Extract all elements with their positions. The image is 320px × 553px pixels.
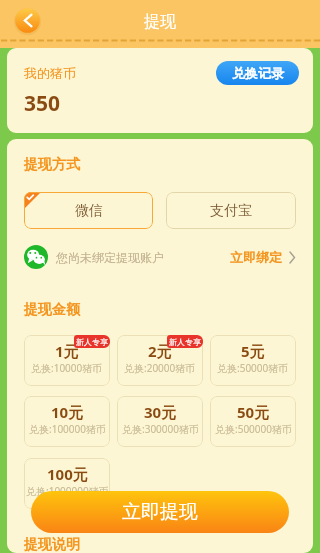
button[interactable]: 50元 <box>210 396 296 447</box>
staticText: 30元 <box>144 402 177 422</box>
staticText: 提现 <box>144 12 176 32</box>
staticText: 我的猪币 <box>24 65 76 81</box>
staticText: 兑换:100000猪币 <box>29 422 106 436</box>
staticText: 兑换:500000猪币 <box>215 422 292 436</box>
button[interactable]: 10元 <box>24 396 110 447</box>
button[interactable]: 您尚未绑定提现账户 <box>24 244 296 270</box>
staticText: 2元 <box>148 341 172 361</box>
staticText: 提现说明 <box>24 536 80 553</box>
staticText: 您尚未绑定提现账户 <box>56 250 164 265</box>
staticText: 10元 <box>51 402 84 422</box>
button[interactable]: 100元 <box>24 458 110 509</box>
staticText: 新人专享 <box>169 337 201 347</box>
staticText: 提现方式 <box>24 156 80 174</box>
staticText: 兑换记录 <box>232 65 284 81</box>
staticText: 兑换:10000猪币 <box>31 361 103 375</box>
button[interactable]: 支付宝 <box>166 192 296 229</box>
staticText: 提现金额 <box>24 301 80 319</box>
staticText: 50元 <box>237 402 270 422</box>
staticText: 兑换:20000猪币 <box>124 361 196 375</box>
staticText: 新人专享 <box>76 337 108 347</box>
button[interactable]: 1元 <box>24 335 110 386</box>
staticText: 350 <box>24 89 61 118</box>
button[interactable]: Back <box>14 7 41 34</box>
staticText: 兑换:1000000猪币 <box>26 484 109 498</box>
button[interactable]: 5元 <box>210 335 296 386</box>
button[interactable]: 微信 <box>24 192 153 229</box>
button[interactable]: 30元 <box>117 396 203 447</box>
staticText: 兑换:50000猪币 <box>217 361 289 375</box>
button[interactable]: 2元 <box>117 335 203 386</box>
button[interactable]: 立即提现 <box>31 491 289 533</box>
staticText: 1元 <box>55 341 79 361</box>
staticText: 5元 <box>241 341 265 361</box>
button[interactable]: 兑换记录 <box>216 61 299 85</box>
staticText: 微信 <box>75 202 103 220</box>
staticText: 支付宝 <box>210 202 252 220</box>
staticText: 兑换:300000猪币 <box>122 422 199 436</box>
staticText: 立即提现 <box>122 500 198 524</box>
staticText: 立即绑定 <box>230 249 282 265</box>
staticText: 100元 <box>47 464 88 484</box>
